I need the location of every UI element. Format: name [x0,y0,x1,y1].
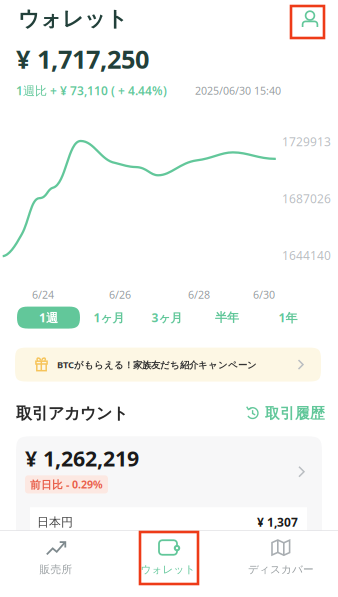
staticText: 前日比 - 0.29% [30,477,103,491]
button[interactable]: 半年 [196,307,258,329]
staticText: 6/30 [253,287,275,302]
staticText: 取引履歴 [265,404,325,422]
staticText: 1週 [39,310,58,325]
button[interactable]: ¥ 1,262,219 [16,436,322,507]
staticText: 3ヶ月 [151,310,182,325]
staticText: ウォレット [18,6,128,32]
button[interactable]: Account [297,6,323,32]
button[interactable]: 1ヶ月 [80,307,138,329]
button[interactable]: 日本円 [30,507,307,556]
button[interactable]: 取引履歴 [246,404,325,422]
button[interactable]: ディスカバー [224,531,338,597]
staticText: 1年 [278,310,297,325]
staticText: 6/26 [109,287,131,302]
staticText: ウォレット [140,563,195,576]
staticText: 取引アカウント [16,404,128,423]
staticText: 6/28 [188,287,210,302]
staticText: 半年 [215,310,239,325]
staticText: BTCがもらえる！家族友だち紹介キャンペーン [57,358,257,371]
button[interactable]: 3ヶ月 [138,307,196,329]
staticText: ディスカバー [248,563,314,576]
staticText: 1644140 [282,247,331,263]
staticText: 日本円 [37,515,73,529]
button[interactable]: ウォレット [112,531,224,597]
staticText: 1週比 + ¥ 73,110 ( + 4.44%) [16,83,167,98]
button[interactable]: 1年 [258,307,318,329]
staticText: ¥ 1,307 [257,514,298,530]
staticText: 2025/06/30 15:40 [195,83,281,98]
staticText: 販売所 [39,563,72,576]
button[interactable]: 1週 [17,307,80,329]
staticText: 1729913 [282,134,331,149]
staticText: ¥ 1,262,219 [25,444,139,472]
staticText: ¥ 1,717,250 [16,42,149,76]
button[interactable]: BTCがもらえる！家族友だち紹介キャンペーン [15,348,321,382]
button[interactable]: 販売所 [0,531,112,597]
staticText: 1687026 [282,190,331,206]
staticText: 6/24 [32,287,54,302]
staticText: 1ヶ月 [93,310,124,325]
